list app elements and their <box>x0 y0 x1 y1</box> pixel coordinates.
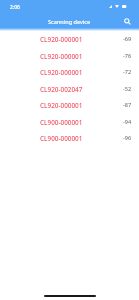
button[interactable]: CL920-002047 <box>0 81 139 97</box>
staticText: Scanning device <box>48 18 91 26</box>
button[interactable]: CL920-000001 <box>0 48 139 64</box>
staticText: 2:06 <box>10 4 20 11</box>
staticText: -72 <box>123 68 132 76</box>
staticText: -69 <box>123 35 132 43</box>
button[interactable]: Search <box>122 16 133 27</box>
staticText: CL920-000001 <box>40 52 83 61</box>
button[interactable]: CL920-000001 <box>0 31 139 47</box>
button[interactable]: CL900-000001 <box>0 130 139 146</box>
staticText: CL920-000001 <box>40 35 83 44</box>
staticText: CL920-000001 <box>40 68 83 77</box>
staticText: CL900-000001 <box>40 134 83 143</box>
staticText: -87 <box>123 101 132 109</box>
staticText: -94 <box>123 118 132 126</box>
staticText: CL900-000001 <box>40 118 83 127</box>
button[interactable]: CL920-000001 <box>0 97 139 113</box>
staticText: -96 <box>123 134 132 142</box>
button[interactable]: CL920-000001 <box>0 64 139 80</box>
button[interactable]: CL900-000001 <box>0 114 139 130</box>
staticText: CL920-000001 <box>40 101 83 110</box>
staticText: -52 <box>123 85 132 93</box>
staticText: CL920-002047 <box>40 85 83 94</box>
staticText: -76 <box>123 52 132 60</box>
